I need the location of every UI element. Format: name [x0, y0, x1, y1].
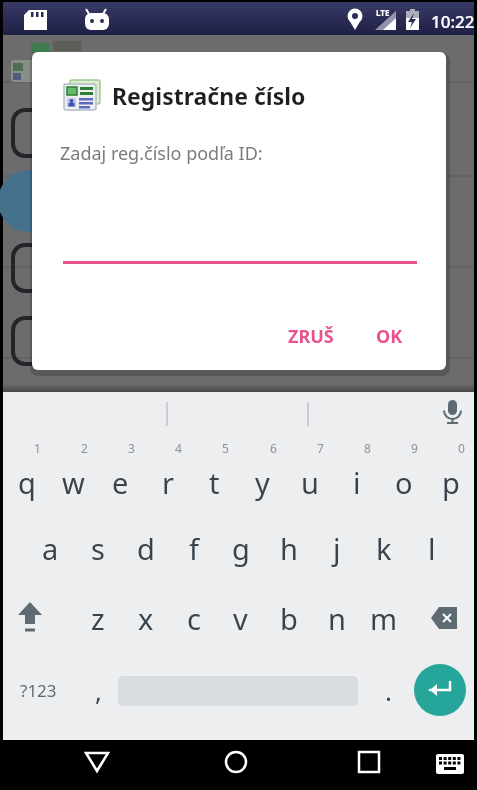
button[interactable]: q [3, 460, 50, 504]
staticText: a [42, 529, 59, 568]
staticText: ?123 [20, 679, 57, 702]
button[interactable]: l [408, 526, 455, 570]
staticText: f [189, 529, 199, 568]
staticText: i [353, 463, 361, 502]
staticText: 2 [81, 440, 88, 456]
button[interactable]: p [427, 460, 474, 504]
staticText: Zadaj reg.číslo podľa ID: [60, 141, 263, 166]
staticText: g [232, 529, 250, 568]
staticText: e [112, 463, 129, 502]
button[interactable]: h [265, 526, 312, 570]
staticText: o [395, 463, 413, 502]
button[interactable]: z [74, 596, 121, 640]
staticText: d [137, 529, 155, 568]
button[interactable]: m [360, 596, 407, 640]
staticText: LTE [376, 7, 390, 17]
staticText: , [95, 673, 102, 708]
button[interactable]: c [170, 596, 217, 640]
button[interactable]: w [50, 460, 97, 504]
staticText: q [18, 463, 36, 502]
staticText: l [428, 529, 436, 568]
staticText: . [385, 673, 392, 708]
staticText: 9 [411, 440, 418, 456]
staticText: m [370, 599, 398, 638]
staticText: v [233, 599, 248, 638]
button[interactable] [414, 664, 466, 716]
button[interactable]: t [191, 460, 238, 504]
button[interactable]: s [74, 526, 121, 570]
button[interactable] [214, 750, 258, 776]
button[interactable] [417, 596, 467, 640]
staticText: 3 [128, 440, 135, 456]
button[interactable]: r [144, 460, 191, 504]
button[interactable]: x [122, 596, 169, 640]
button[interactable]: k [360, 526, 407, 570]
button[interactable]: OK [359, 314, 419, 358]
staticText: t [209, 463, 220, 502]
staticText: 5 [222, 440, 229, 456]
staticText: r [162, 463, 174, 502]
button[interactable] [347, 750, 391, 776]
staticText: j [333, 529, 341, 568]
staticText: 6 [270, 440, 277, 456]
staticText: 1 [34, 440, 41, 456]
button[interactable]: n [313, 596, 360, 640]
button[interactable]: e [97, 460, 144, 504]
button[interactable]: a [27, 526, 74, 570]
button[interactable] [75, 750, 119, 776]
staticText: w [62, 463, 85, 502]
staticText: 8 [364, 440, 371, 456]
button[interactable]: y [239, 460, 286, 504]
button[interactable]: f [170, 526, 217, 570]
staticText: 0 [458, 440, 465, 456]
staticText: p [442, 463, 460, 502]
staticText: x [138, 599, 154, 638]
staticText: y [255, 463, 270, 502]
staticText: h [280, 529, 298, 568]
staticText: ZRUŠ [288, 324, 334, 349]
staticText: u [301, 463, 319, 502]
staticText: s [91, 529, 105, 568]
staticText: OK [376, 324, 403, 349]
button[interactable]: ?123 [11, 668, 65, 712]
staticText: z [91, 599, 105, 638]
button[interactable]: ZRUŠ [265, 314, 357, 358]
button[interactable]: u [286, 460, 333, 504]
staticText: k [376, 529, 392, 568]
button[interactable]: v [217, 596, 264, 640]
staticText: c [187, 599, 201, 638]
button[interactable]: j [313, 526, 360, 570]
button[interactable] [6, 596, 54, 640]
staticText: b [280, 599, 298, 638]
button[interactable]: i [333, 460, 380, 504]
staticText: 7 [317, 440, 324, 456]
staticText: 4 [175, 440, 182, 456]
button[interactable] [434, 753, 468, 777]
staticText: Registračne číslo [112, 80, 306, 111]
staticText: 10:22 [431, 10, 475, 33]
button[interactable]: o [380, 460, 427, 504]
button[interactable]: d [122, 526, 169, 570]
button[interactable]: g [217, 526, 264, 570]
staticText: n [328, 599, 346, 638]
button[interactable]: b [265, 596, 312, 640]
